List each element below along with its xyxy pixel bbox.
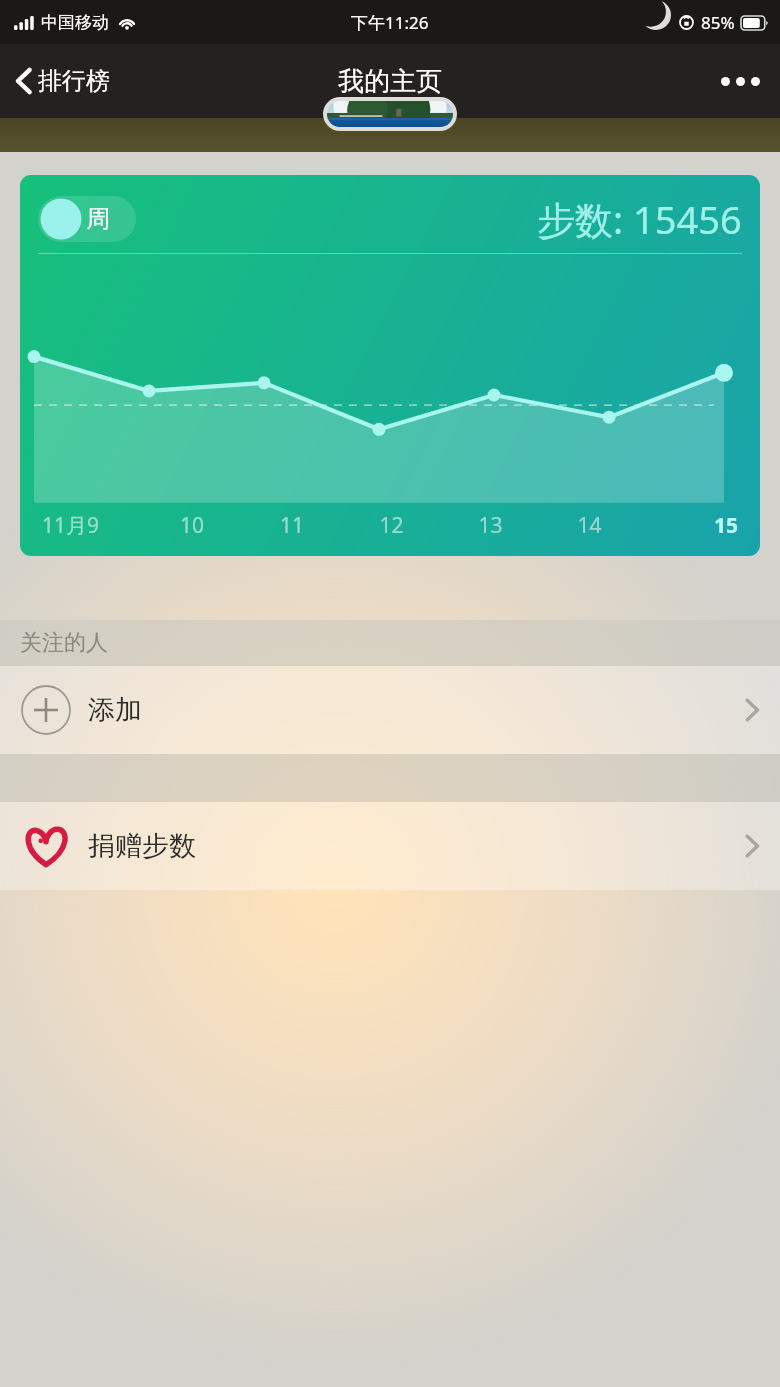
staticText: 14 <box>540 511 639 540</box>
staticText: 12 <box>342 511 441 540</box>
staticText: 85% <box>701 11 735 34</box>
staticText: 关注的人 <box>20 629 108 657</box>
staticText: 周 <box>86 204 110 234</box>
staticText: 捐赠步数 <box>88 829 196 863</box>
staticText: 11 <box>242 511 342 540</box>
button[interactable]: Profile photo <box>323 97 457 131</box>
button[interactable]: 排行榜 <box>0 56 128 106</box>
staticText: 排行榜 <box>38 66 110 96</box>
button[interactable]: More options <box>701 59 780 104</box>
staticText: 添加 <box>88 693 142 727</box>
button[interactable]: 周 <box>20 175 760 556</box>
staticText: 中国移动 <box>41 12 109 33</box>
staticText: 步数: 15456 <box>537 193 742 245</box>
staticText: 10 <box>142 511 242 540</box>
button[interactable]: 周 <box>38 196 136 242</box>
staticText: 11月9 <box>42 511 142 540</box>
button[interactable]: 捐赠步数 <box>0 802 780 890</box>
staticText: 我的主页 <box>338 65 442 98</box>
staticText: 下午11:26 <box>351 11 429 34</box>
staticText: 13 <box>441 511 540 540</box>
staticText: 15 <box>639 511 738 540</box>
button[interactable]: 添加 <box>0 666 780 754</box>
